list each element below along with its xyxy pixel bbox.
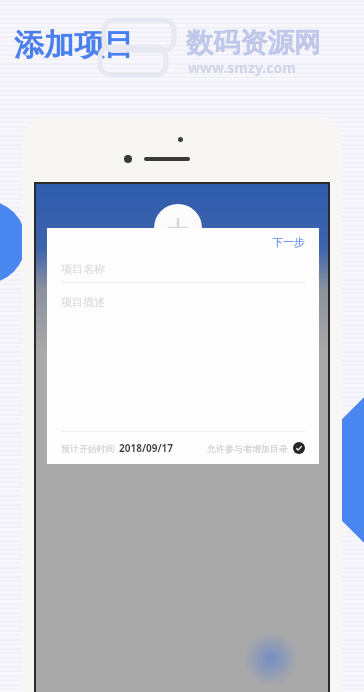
button[interactable]: Add (154, 204, 202, 252)
staticText: 允许参与者增加目录 (207, 443, 288, 454)
staticText: www.smzy.com (188, 58, 296, 77)
staticText: 项目描述 (61, 295, 105, 309)
button[interactable]: 下一步 (268, 233, 309, 251)
button[interactable]: 项目描述 (61, 292, 305, 312)
button[interactable]: 预计开始时间 (61, 441, 174, 455)
staticText: 添加项目 (14, 26, 134, 64)
staticText: 2018/09/17 (119, 441, 174, 455)
staticText: 项目名称 (61, 262, 105, 276)
button[interactable]: 允许参与者增加目录 (207, 442, 305, 454)
staticText: 数码资源网 (186, 26, 321, 60)
other: Enabled (293, 442, 305, 454)
button[interactable]: 项目名称 (61, 256, 305, 282)
staticText: 下一步 (272, 235, 305, 249)
staticText: 预计开始时间 (61, 443, 115, 454)
